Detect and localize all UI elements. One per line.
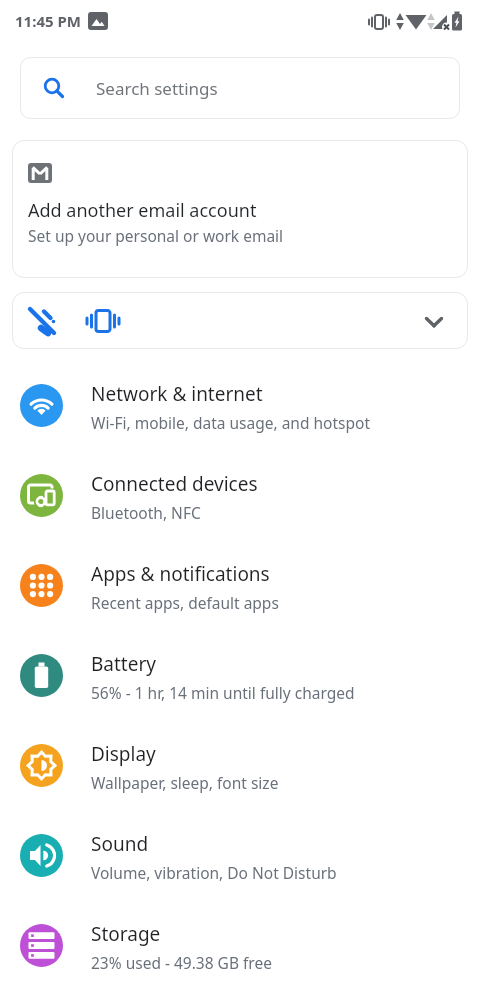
button[interactable]: Search settings bbox=[20, 57, 460, 119]
button[interactable]: Sound bbox=[0, 810, 480, 900]
staticText: Bluetooth, NFC bbox=[91, 502, 201, 523]
staticText: Add another email account bbox=[28, 198, 257, 223]
staticText: Sound bbox=[91, 831, 149, 857]
button[interactable]: Add another email account bbox=[12, 140, 468, 278]
staticText: Storage bbox=[91, 921, 161, 947]
staticText: Connected devices bbox=[91, 471, 258, 497]
staticText: Recent apps, default apps bbox=[91, 592, 279, 613]
staticText: Wi-Fi, mobile, data usage, and hotspot bbox=[91, 412, 370, 433]
button[interactable]: Storage bbox=[0, 900, 480, 990]
button[interactable]: Battery bbox=[0, 630, 480, 720]
staticText: 56% - 1 hr, 14 min until fully charged bbox=[91, 682, 355, 703]
staticText: 23% used - 49.38 GB free bbox=[91, 952, 272, 973]
staticText: Set up your personal or work email bbox=[28, 225, 284, 246]
staticText: Search settings bbox=[96, 77, 218, 100]
staticText: 11:45 PM bbox=[15, 11, 81, 31]
staticText: Wallpaper, sleep, font size bbox=[91, 772, 279, 793]
button[interactable]: Connected devices bbox=[0, 450, 480, 540]
button[interactable] bbox=[12, 292, 468, 349]
button[interactable]: Display bbox=[0, 720, 480, 810]
staticText: Display bbox=[91, 741, 156, 767]
button[interactable]: Network & internet bbox=[0, 360, 480, 450]
staticText: Battery bbox=[91, 651, 156, 677]
staticText: Volume, vibration, Do Not Disturb bbox=[91, 862, 337, 883]
button[interactable]: Apps & notifications bbox=[0, 540, 480, 630]
staticText: Apps & notifications bbox=[91, 561, 270, 587]
staticText: Network & internet bbox=[91, 381, 263, 407]
